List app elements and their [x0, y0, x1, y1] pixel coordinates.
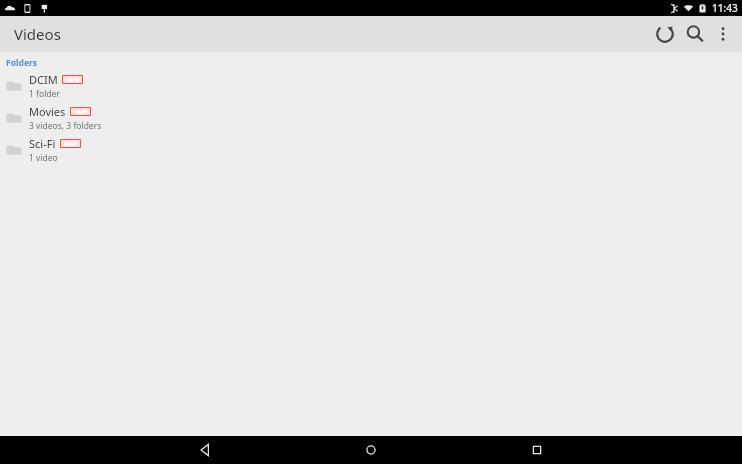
staticText: NEW — [63, 140, 78, 147]
staticText: NEW — [65, 76, 80, 83]
staticText: Videos — [14, 24, 61, 44]
button[interactable]: Search — [682, 21, 708, 47]
button[interactable]: Refresh — [652, 21, 678, 47]
button[interactable]: Recent apps — [509, 436, 565, 464]
staticText: Folders — [6, 57, 38, 69]
staticText: Sci-Fi — [29, 136, 56, 151]
staticText: 11:43 — [712, 1, 738, 15]
button[interactable]: DCIM — [0, 70, 742, 102]
staticText: Movies — [29, 104, 66, 119]
button[interactable]: Movies — [0, 102, 742, 134]
staticText: DCIM — [29, 72, 58, 87]
staticText: 1 video — [29, 152, 58, 164]
button[interactable]: Sci-Fi — [0, 134, 742, 166]
button[interactable]: Back — [177, 436, 233, 464]
staticText: 1 folder — [29, 88, 60, 100]
staticText: NEW — [73, 108, 88, 115]
button[interactable]: More options — [710, 21, 736, 47]
button[interactable]: Home — [343, 436, 399, 464]
staticText: 3 videos, 3 folders — [29, 120, 102, 132]
